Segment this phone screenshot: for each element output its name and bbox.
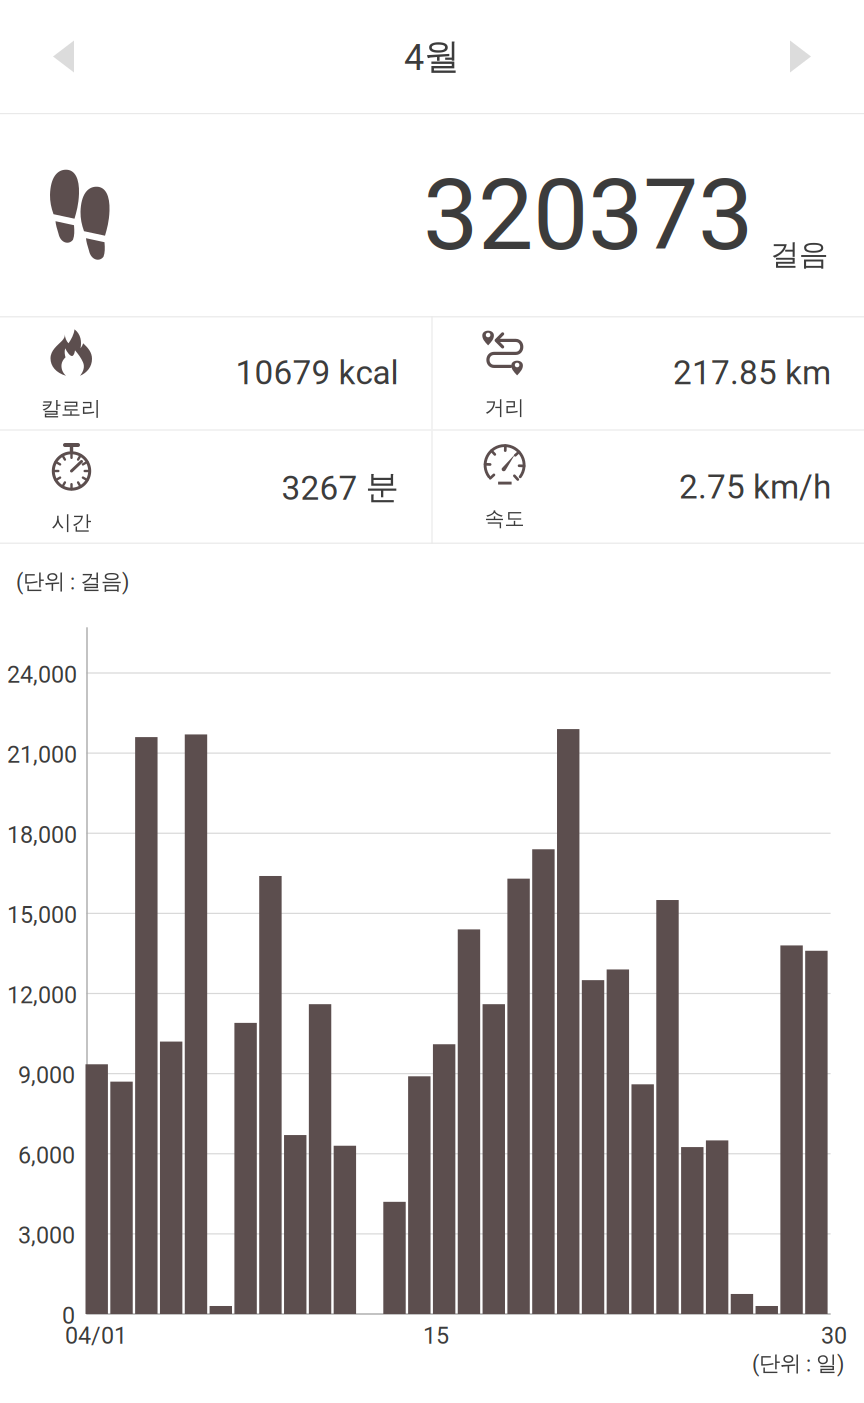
button[interactable]: 시간	[0, 431, 431, 543]
staticText: 3,000	[18, 1222, 75, 1249]
staticText: 217.85 km	[673, 353, 831, 392]
staticText: 04/01	[65, 1322, 127, 1349]
staticText: 칼로리	[41, 396, 101, 421]
button[interactable]: Next month	[750, 0, 864, 112]
button[interactable]: 속도	[433, 431, 864, 543]
staticText: 6,000	[18, 1142, 75, 1169]
staticText: (단위 : 일)	[752, 1350, 844, 1377]
staticText: 3267 분	[281, 466, 398, 508]
staticText: 시간	[51, 510, 91, 535]
staticText: 320373	[423, 157, 753, 273]
staticText: 30	[821, 1322, 847, 1349]
staticText: 24,000	[7, 661, 77, 688]
staticText: 12,000	[7, 981, 77, 1009]
staticText: 15	[423, 1322, 449, 1349]
button[interactable]: 칼로리	[0, 317, 431, 429]
button[interactable]: 거리	[433, 317, 864, 429]
staticText: (단위 : 걸음)	[16, 568, 129, 595]
staticText: 15,000	[7, 901, 77, 929]
staticText: 4월	[404, 34, 460, 79]
button[interactable]: Previous month	[0, 0, 114, 112]
staticText: 2.75 km/h	[679, 468, 831, 507]
staticText: 18,000	[7, 821, 77, 848]
staticText: 걸음	[770, 236, 828, 273]
staticText: 속도	[485, 506, 525, 531]
staticText: 21,000	[7, 741, 77, 768]
staticText: 0	[62, 1302, 75, 1329]
staticText: 거리	[485, 395, 525, 420]
staticText: 10679 kcal	[235, 353, 398, 392]
staticText: 9,000	[18, 1062, 75, 1089]
